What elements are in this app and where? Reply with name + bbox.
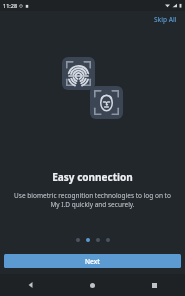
button[interactable]: Back (0, 274, 61, 296)
staticText: Use biometric recognition technologies t… (14, 191, 171, 209)
button[interactable]: Recent apps (123, 274, 185, 296)
staticText: Next (85, 257, 100, 266)
staticText: Skip All (154, 15, 177, 24)
button[interactable]: Next (4, 254, 181, 268)
staticText: 11:28 (3, 2, 18, 9)
staticText: Easy connection (0, 170, 185, 184)
button[interactable]: Skip All (146, 12, 185, 27)
button[interactable]: Home (61, 274, 123, 296)
